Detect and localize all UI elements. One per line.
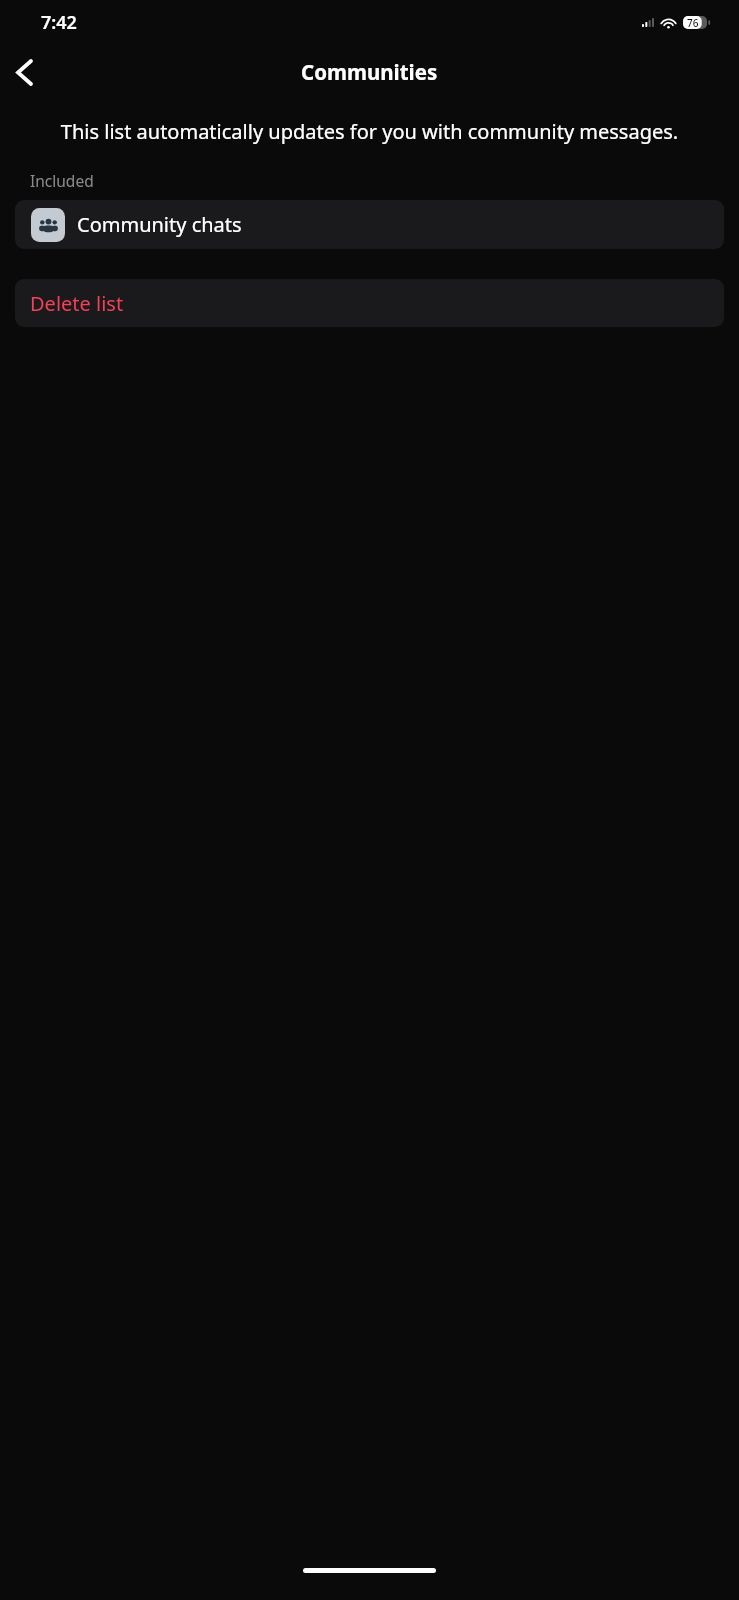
button[interactable]: Back bbox=[0, 48, 48, 96]
staticText: 7:42 bbox=[41, 10, 77, 35]
button[interactable]: Delete list bbox=[15, 279, 724, 327]
staticText: Delete list bbox=[30, 290, 124, 317]
staticText: Included bbox=[30, 170, 94, 191]
staticText: Community chats bbox=[77, 211, 242, 238]
staticText: This list automatically updates for you … bbox=[30, 118, 709, 145]
staticText: 76 bbox=[687, 16, 699, 29]
button[interactable]: Community chats bbox=[15, 200, 724, 249]
staticText: Communities bbox=[301, 58, 438, 86]
